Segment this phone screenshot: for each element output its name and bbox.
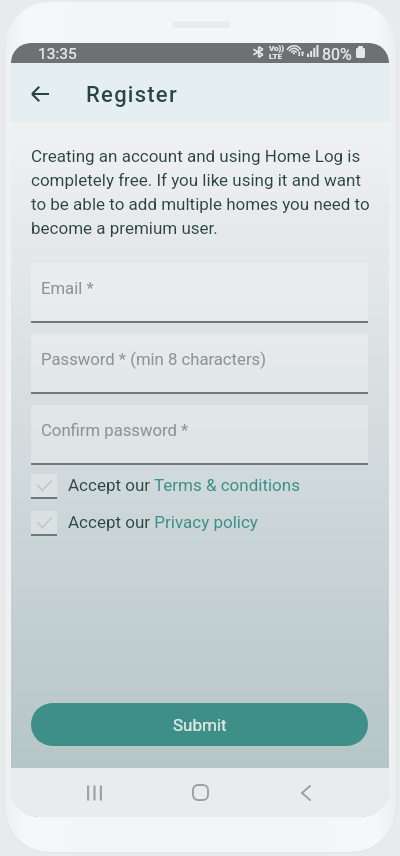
- button[interactable]: Accept our Terms & conditions: [31, 474, 368, 499]
- staticText: Vo)): [269, 44, 285, 53]
- button[interactable]: Confirm password *: [31, 405, 368, 463]
- button[interactable]: Accept our Privacy policy: [31, 511, 368, 536]
- staticText: Password * (min 8 characters): [41, 350, 266, 370]
- staticText: Register: [86, 82, 178, 108]
- staticText: Submit: [173, 715, 227, 735]
- button[interactable]: Back: [283, 770, 328, 815]
- staticText: 80%: [322, 45, 352, 64]
- button[interactable]: Submit: [31, 703, 368, 746]
- button[interactable]: Password * (min 8 characters): [31, 334, 368, 392]
- button[interactable]: Home: [178, 770, 223, 815]
- staticText: Accept our Terms & conditions: [68, 475, 300, 495]
- button[interactable]: Email *: [31, 263, 368, 321]
- staticText: 13:35: [38, 45, 77, 63]
- button[interactable]: Back: [18, 72, 62, 116]
- staticText: Accept our Privacy policy: [68, 512, 258, 532]
- staticText: Confirm password *: [41, 421, 189, 441]
- staticText: Email *: [41, 279, 94, 299]
- staticText: Creating an account and using Home Log i…: [31, 146, 374, 238]
- staticText: LTE: [269, 52, 282, 61]
- button[interactable]: Recent apps: [72, 770, 117, 815]
